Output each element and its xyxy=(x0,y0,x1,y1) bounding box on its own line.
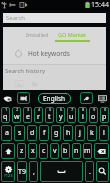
button[interactable]: 7 xyxy=(67,107,76,123)
staticText: u xyxy=(69,112,74,122)
staticText: Hot keywords xyxy=(28,49,70,58)
button[interactable]: k xyxy=(87,125,97,141)
staticText: d xyxy=(30,128,35,138)
staticText: o xyxy=(91,112,96,122)
button[interactable]: Hot keywords xyxy=(3,42,106,64)
button[interactable]: l xyxy=(99,125,109,141)
staticText: English xyxy=(43,94,66,103)
button[interactable]: 0 xyxy=(100,107,109,123)
staticText: j xyxy=(79,128,81,138)
staticText: . xyxy=(89,167,91,177)
staticText: 6 xyxy=(60,107,63,112)
button[interactable]: Keyboard layout xyxy=(97,93,108,104)
staticText: Installed xyxy=(26,31,49,38)
button[interactable]: , xyxy=(29,161,38,182)
staticText: y xyxy=(59,112,63,122)
button[interactable]: . xyxy=(85,161,94,182)
staticText: 15:44 xyxy=(91,0,109,10)
staticText: 1 xyxy=(5,107,8,112)
button[interactable]: n xyxy=(72,143,81,159)
staticText: z xyxy=(20,146,24,156)
button[interactable]: Space xyxy=(40,161,83,182)
button[interactable]: Emoji xyxy=(17,92,30,104)
staticText: i xyxy=(82,112,84,122)
staticText: GO Market xyxy=(58,31,87,38)
staticText: 4 xyxy=(38,107,41,112)
button[interactable]: Shift xyxy=(1,143,15,159)
button[interactable]: Voice input xyxy=(80,92,93,104)
staticText: 9 xyxy=(93,107,96,112)
button[interactable]: 8 xyxy=(78,107,87,123)
staticText: r xyxy=(37,112,40,122)
button[interactable]: GO Keyboard menu xyxy=(2,93,13,104)
staticText: n xyxy=(74,146,79,156)
staticText: ?123 xyxy=(4,173,13,178)
staticText: f xyxy=(43,128,46,138)
staticText: 8 xyxy=(82,107,85,112)
button[interactable]: 2 xyxy=(12,107,21,123)
staticText: x xyxy=(31,146,35,156)
button[interactable]: z xyxy=(17,143,26,159)
button[interactable]: f xyxy=(39,125,49,141)
button[interactable]: Search xyxy=(96,161,109,182)
staticText: q xyxy=(3,112,8,122)
button[interactable]: English xyxy=(38,93,71,104)
button[interactable]: GO Market xyxy=(55,27,90,42)
button[interactable]: c xyxy=(39,143,48,159)
staticText: Search history xyxy=(5,67,46,75)
button[interactable]: d xyxy=(27,125,37,141)
button[interactable]: 3 xyxy=(23,107,32,123)
staticText: s xyxy=(18,128,22,138)
button[interactable]: s xyxy=(14,125,25,141)
button[interactable]: Backspace xyxy=(94,143,109,159)
button[interactable]: g xyxy=(51,125,61,141)
button[interactable]: a xyxy=(1,125,12,141)
staticText: m xyxy=(84,146,91,156)
button[interactable]: 9 xyxy=(89,107,98,123)
staticText: t xyxy=(48,112,51,122)
staticText: a xyxy=(5,128,9,138)
staticText: 5 xyxy=(49,107,52,112)
button[interactable]: v xyxy=(50,143,59,159)
staticText: e xyxy=(26,112,30,122)
staticText: k xyxy=(90,128,94,138)
button[interactable]: T9 xyxy=(17,161,27,182)
button[interactable]: Search xyxy=(3,13,106,23)
button[interactable]: 5 xyxy=(45,107,54,123)
button[interactable]: 4 xyxy=(34,107,43,123)
staticText: v xyxy=(53,146,57,156)
staticText: Search xyxy=(6,14,25,22)
button[interactable]: h xyxy=(63,125,73,141)
staticText: 0 xyxy=(104,107,107,112)
staticText: , xyxy=(33,167,35,177)
staticText: w xyxy=(14,112,20,122)
staticText: b xyxy=(63,146,68,156)
staticText: 2 xyxy=(16,107,19,112)
staticText: 7 xyxy=(71,107,74,112)
staticText: 3 xyxy=(27,107,30,112)
staticText: T9 xyxy=(18,167,26,177)
button[interactable]: x xyxy=(28,143,37,159)
button[interactable]: j xyxy=(75,125,85,141)
staticText: l xyxy=(103,128,105,138)
staticText: p xyxy=(102,112,107,122)
button[interactable]: b xyxy=(61,143,70,159)
button[interactable]: 6 xyxy=(56,107,65,123)
button[interactable]: Installed xyxy=(20,27,55,42)
staticText: h xyxy=(66,128,71,138)
button[interactable]: m xyxy=(83,143,92,159)
staticText: g xyxy=(54,128,59,138)
button[interactable]: 1 xyxy=(1,107,10,123)
staticText: c xyxy=(42,146,46,156)
button[interactable]: Symbols xyxy=(1,161,15,182)
